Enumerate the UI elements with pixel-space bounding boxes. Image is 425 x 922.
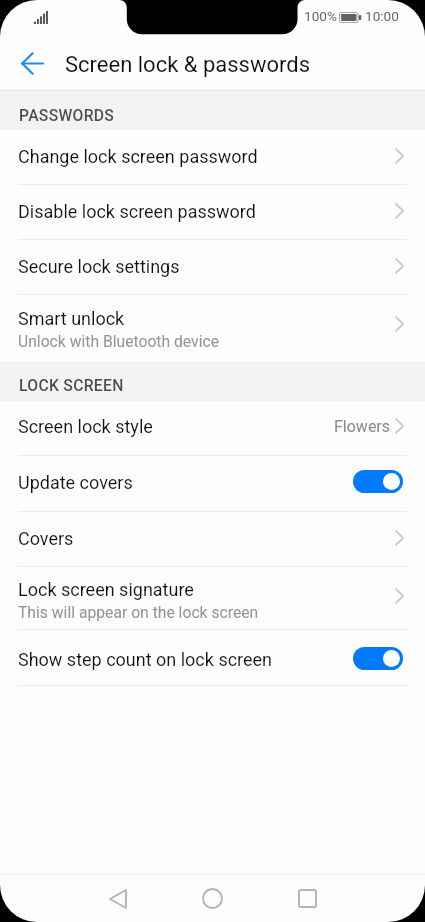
button[interactable]: Show step count on lock screen — [0, 630, 425, 685]
button[interactable]: Screen lock style — [0, 401, 425, 455]
staticText: Screen lock & passwords — [65, 52, 311, 78]
staticText: Lock screen signature — [18, 579, 194, 600]
staticText: Unlock with Bluetooth device — [18, 332, 220, 350]
button[interactable]: Back — [78, 875, 158, 922]
button[interactable]: Home — [172, 875, 252, 922]
button[interactable]: Update covers — [0, 456, 425, 511]
button[interactable]: Smart unlock — [0, 295, 425, 361]
button[interactable]: Back — [0, 38, 54, 90]
staticText: Secure lock settings — [18, 256, 180, 277]
staticText: Smart unlock — [18, 308, 125, 329]
button[interactable]: Disable lock screen password — [0, 185, 425, 239]
button[interactable]: Secure lock settings — [0, 240, 425, 294]
staticText: Show step count on lock screen — [18, 649, 273, 670]
button[interactable]: Recents — [267, 875, 347, 922]
staticText: Change lock screen password — [18, 146, 258, 167]
staticText: 100% — [304, 8, 337, 24]
staticText: Flowers — [334, 417, 391, 436]
staticText: LOCK SCREEN — [19, 376, 124, 394]
staticText: This will appear on the lock screen — [18, 603, 259, 621]
button[interactable]: Covers — [0, 512, 425, 566]
staticText: Disable lock screen password — [18, 201, 256, 222]
staticText: Covers — [18, 528, 74, 549]
button[interactable]: Lock screen signature — [0, 567, 425, 629]
staticText: Update covers — [18, 472, 133, 493]
button[interactable]: Change lock screen password — [0, 130, 425, 184]
staticText: Screen lock style — [18, 416, 153, 437]
staticText: 10:00 — [365, 8, 399, 24]
staticText: PASSWORDS — [19, 106, 115, 124]
